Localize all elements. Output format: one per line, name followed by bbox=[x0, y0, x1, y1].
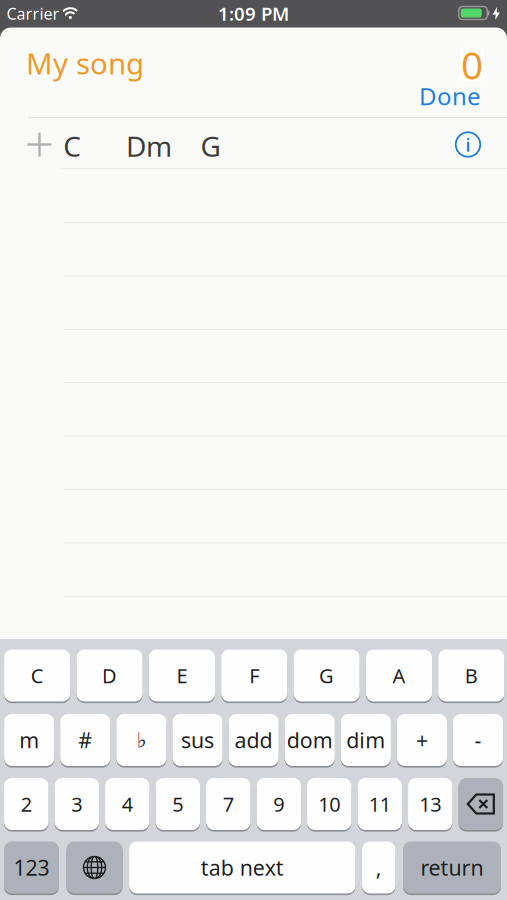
button[interactable]: 3 bbox=[54, 777, 99, 831]
button[interactable]: Dm bbox=[126, 127, 172, 165]
staticText: add bbox=[235, 726, 273, 754]
staticText: return bbox=[420, 853, 483, 882]
staticText: 123 bbox=[13, 853, 49, 882]
staticText: Dm bbox=[126, 127, 172, 165]
button[interactable]: dim bbox=[341, 713, 391, 767]
staticText: G bbox=[200, 127, 220, 165]
button[interactable]: Delete bbox=[459, 777, 503, 831]
button[interactable]: 9 bbox=[257, 777, 301, 831]
staticText: dom bbox=[287, 726, 333, 754]
staticText: 11 bbox=[369, 791, 391, 817]
staticText: My song bbox=[26, 43, 144, 82]
button[interactable]: ♭ bbox=[116, 713, 166, 767]
staticText: C bbox=[31, 662, 44, 689]
button[interactable]: Add chord bbox=[27, 132, 51, 156]
button[interactable]: Done bbox=[361, 80, 481, 112]
button[interactable]: 5 bbox=[156, 777, 200, 831]
button[interactable]: C bbox=[4, 648, 70, 702]
button[interactable]: D bbox=[76, 648, 143, 702]
staticText: A bbox=[392, 662, 405, 689]
staticText: 4 bbox=[122, 791, 133, 817]
button[interactable]: E bbox=[149, 648, 215, 702]
button[interactable]: 10 bbox=[307, 777, 352, 831]
button[interactable]: tab next bbox=[129, 840, 356, 894]
staticText: Done bbox=[419, 80, 481, 112]
staticText: E bbox=[176, 662, 187, 689]
staticText: + bbox=[416, 726, 428, 754]
button[interactable]: B bbox=[438, 648, 504, 702]
button[interactable]: F bbox=[221, 648, 287, 702]
button[interactable]: Capo bbox=[460, 39, 484, 90]
staticText: sus bbox=[181, 726, 214, 754]
button[interactable]: C bbox=[63, 127, 81, 165]
staticText: 2 bbox=[21, 791, 32, 817]
staticText: B bbox=[465, 662, 478, 689]
button[interactable]: - bbox=[453, 713, 503, 767]
staticText: m bbox=[19, 726, 39, 754]
button[interactable]: A bbox=[366, 648, 432, 702]
staticText: F bbox=[249, 662, 259, 689]
staticText: 5 bbox=[172, 791, 183, 817]
staticText: 0 bbox=[461, 39, 483, 90]
staticText: - bbox=[474, 726, 481, 754]
button[interactable]: sus bbox=[172, 713, 223, 767]
button[interactable]: Next keyboard bbox=[66, 840, 122, 894]
staticText: 10 bbox=[318, 791, 340, 817]
button[interactable]: # bbox=[60, 713, 110, 767]
button[interactable]: m bbox=[4, 713, 54, 767]
button[interactable]: dom bbox=[285, 713, 335, 767]
staticText: 1:09 PM bbox=[218, 1, 289, 26]
staticText: C bbox=[63, 127, 81, 165]
staticText: Carrier bbox=[6, 3, 59, 24]
staticText: 7 bbox=[223, 791, 234, 817]
staticText: , bbox=[376, 853, 382, 882]
button[interactable]: 13 bbox=[408, 777, 453, 831]
button[interactable]: 123 bbox=[4, 840, 59, 894]
button[interactable]: , bbox=[362, 840, 396, 894]
button[interactable]: + bbox=[397, 713, 447, 767]
staticText: 9 bbox=[273, 791, 284, 817]
staticText: 13 bbox=[419, 791, 441, 817]
button[interactable]: 7 bbox=[206, 777, 251, 831]
staticText: 3 bbox=[71, 791, 82, 817]
staticText: dim bbox=[346, 726, 385, 754]
button[interactable]: 11 bbox=[358, 777, 402, 831]
button[interactable]: 4 bbox=[105, 777, 149, 831]
staticText: tab next bbox=[201, 853, 284, 882]
staticText: # bbox=[78, 726, 92, 754]
button[interactable]: G bbox=[200, 127, 220, 165]
button[interactable]: Song info bbox=[455, 131, 481, 157]
button[interactable]: 2 bbox=[4, 777, 49, 831]
staticText: i bbox=[465, 133, 470, 156]
button[interactable]: return bbox=[403, 840, 501, 894]
button[interactable]: add bbox=[228, 713, 279, 767]
staticText: ♭ bbox=[136, 728, 146, 752]
staticText: G bbox=[319, 662, 334, 689]
staticText: D bbox=[102, 662, 117, 689]
button[interactable]: G bbox=[293, 648, 360, 702]
